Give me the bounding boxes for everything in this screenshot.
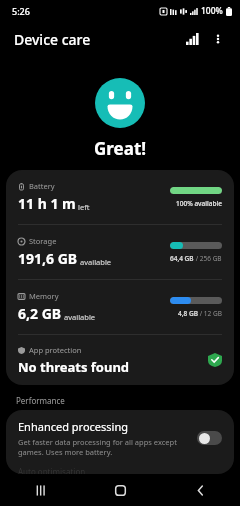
button[interactable]: Battery xyxy=(6,170,234,224)
staticText: available xyxy=(64,312,96,322)
button[interactable]: App protection xyxy=(6,335,234,385)
staticText: Storage xyxy=(29,236,57,246)
staticText: 100% xyxy=(201,5,223,17)
staticText: 64,4 GB xyxy=(170,254,194,263)
staticText: Auto optimisation xyxy=(18,466,86,474)
staticText: Battery xyxy=(29,181,55,191)
button[interactable]: Back xyxy=(160,474,240,506)
staticText: 191,6 GB xyxy=(18,249,78,268)
staticText: Performance xyxy=(16,395,65,406)
staticText: App protection xyxy=(29,345,82,355)
button[interactable]: Memory xyxy=(6,280,234,334)
staticText: / 256 GB xyxy=(194,254,222,263)
button[interactable]: More options xyxy=(205,26,231,52)
staticText: 4,8 GB xyxy=(178,309,198,318)
staticText: Get faster data processing for all apps … xyxy=(18,437,189,457)
button[interactable]: Home xyxy=(80,474,160,506)
staticText: 5:26 xyxy=(12,5,30,17)
staticText: No threats found xyxy=(18,358,130,376)
staticText: 11 h 1 m xyxy=(18,194,76,213)
button[interactable]: Auto optimisation xyxy=(6,466,234,474)
staticText: Memory xyxy=(29,291,59,301)
staticText: Device care xyxy=(14,30,91,49)
staticText: Enhanced processing xyxy=(18,419,128,434)
staticText: 6,2 GB xyxy=(18,304,62,323)
button[interactable]: Storage xyxy=(6,225,234,279)
staticText: Great! xyxy=(94,137,147,160)
button[interactable]: Recent apps xyxy=(0,474,80,506)
staticText: 100% available xyxy=(176,199,222,208)
staticText: left xyxy=(78,202,90,212)
staticText: available xyxy=(80,257,112,267)
button[interactable]: Usage statistics xyxy=(179,26,205,52)
button[interactable]: Enhanced processing xyxy=(6,410,234,466)
staticText: / 12 GB xyxy=(198,309,222,318)
button[interactable]: Enhanced processing toggle xyxy=(197,431,222,445)
